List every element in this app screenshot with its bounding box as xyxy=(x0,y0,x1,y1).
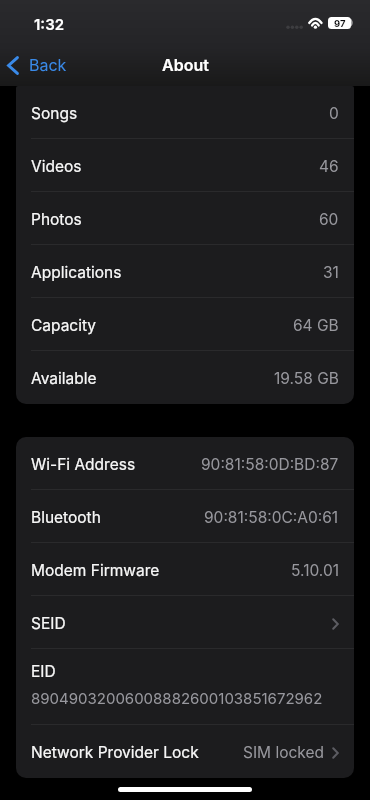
staticText: 5.10.01 xyxy=(291,561,339,580)
button[interactable]: Videos xyxy=(16,139,354,192)
staticText: Capacity xyxy=(31,316,97,335)
button[interactable]: Modem Firmware xyxy=(16,543,354,596)
staticText: 97 xyxy=(334,18,346,29)
staticText: Songs xyxy=(31,104,78,123)
staticText: Applications xyxy=(31,263,122,282)
staticText: 90:81:58:0D:BD:87 xyxy=(201,455,339,474)
staticText: 60 xyxy=(319,210,339,229)
button[interactable]: Photos xyxy=(16,192,354,245)
staticText: Bluetooth xyxy=(31,508,101,527)
button[interactable]: Capacity xyxy=(16,298,354,351)
staticText: 0 xyxy=(329,104,339,123)
button[interactable]: SEID xyxy=(16,596,354,649)
staticText: Network Provider Lock xyxy=(31,743,199,762)
button[interactable]: Network Provider Lock xyxy=(16,725,354,778)
staticText: 64 GB xyxy=(293,316,339,335)
button[interactable]: Songs xyxy=(16,86,354,139)
staticText: Back xyxy=(29,55,67,74)
button[interactable]: Available xyxy=(16,351,354,404)
staticText: SIM locked xyxy=(243,743,325,762)
staticText: Modem Firmware xyxy=(31,561,160,580)
button[interactable]: Applications xyxy=(16,245,354,298)
button[interactable]: Back xyxy=(0,51,77,81)
staticText: Photos xyxy=(31,210,82,229)
staticText: 31 xyxy=(323,263,339,282)
staticText: Available xyxy=(31,369,97,388)
staticText: About xyxy=(162,55,209,74)
button[interactable]: Bluetooth xyxy=(16,490,354,543)
staticText: 90:81:58:0C:A0:61 xyxy=(204,508,339,527)
staticText: 46 xyxy=(319,157,339,176)
staticText: Videos xyxy=(31,157,82,176)
staticText: 19.58 GB xyxy=(274,369,339,388)
staticText: Wi-Fi Address xyxy=(31,455,136,474)
button[interactable]: EID xyxy=(16,649,354,725)
staticText: EID xyxy=(31,662,56,681)
staticText: 89049032006008882600103851672962 xyxy=(31,689,323,707)
staticText: 1:32 xyxy=(34,15,65,33)
staticText: SEID xyxy=(31,614,66,633)
button[interactable]: Wi-Fi Address xyxy=(16,437,354,490)
